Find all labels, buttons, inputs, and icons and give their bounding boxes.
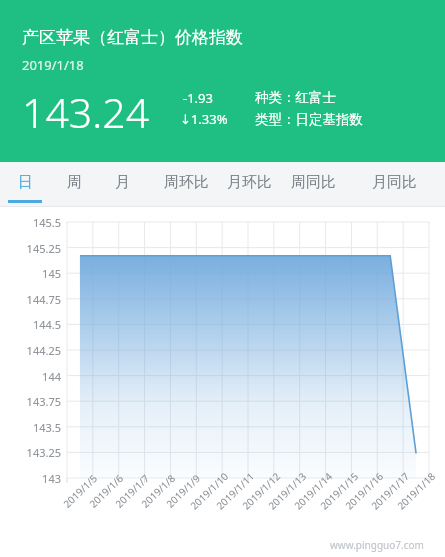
staticText: 2019/1/10 [182,464,236,517]
button[interactable]: 周环比 [155,162,217,207]
staticText: 类型：日定基指数 [255,111,363,128]
button[interactable]: 周 [54,162,94,207]
staticText: 143 [0,471,61,486]
staticText: 周环比 [164,173,209,192]
staticText: 144.5 [0,317,61,332]
staticText: 周同比 [291,173,336,192]
staticText: 2019/1/14 [286,464,340,517]
staticText: -1.93 [183,89,213,107]
staticText: 144.75 [0,292,61,307]
staticText: ↓1.33% [180,110,228,128]
staticText: 143.5 [0,420,61,435]
staticText: 月环比 [227,173,272,192]
staticText: 日 [18,173,33,192]
staticText: 2019/1/5 [53,464,107,517]
staticText: 2019/1/8 [131,464,185,517]
staticText: 2019/1/13 [260,464,314,517]
staticText: 产区苹果（红富士）价格指数 [22,27,243,48]
staticText: 2019/1/17 [363,464,417,517]
staticText: 144 [0,369,61,384]
staticText: 143.25 [0,445,61,460]
staticText: 2019/1/18 [389,464,443,517]
button[interactable]: 月同比 [363,162,425,207]
button[interactable]: 月 [102,162,142,207]
button[interactable]: 周同比 [282,162,344,207]
staticText: 2019/1/15 [312,464,366,517]
staticText: 月同比 [372,173,417,192]
staticText: 143.24 [22,84,150,140]
staticText: 月 [115,173,130,192]
staticText: 145.25 [0,241,61,256]
staticText: 2019/1/6 [79,464,133,517]
staticText: 2019/1/12 [234,464,288,517]
button[interactable]: 月环比 [218,162,280,207]
button[interactable]: 日 [5,162,45,207]
staticText: 2019/1/7 [105,464,159,517]
staticText: 2019/1/9 [156,464,210,517]
staticText: www.pingguo7.com [330,538,424,552]
staticText: 周 [67,173,82,192]
staticText: 145 [0,266,61,281]
staticText: 145.5 [0,215,61,230]
staticText: 2019/1/18 [22,56,84,74]
staticText: 2019/1/16 [337,464,391,517]
staticText: 143.75 [0,394,61,409]
staticText: 2019/1/11 [208,464,262,517]
staticText: 种类：红富士 [255,89,336,106]
staticText: 144.25 [0,343,61,358]
